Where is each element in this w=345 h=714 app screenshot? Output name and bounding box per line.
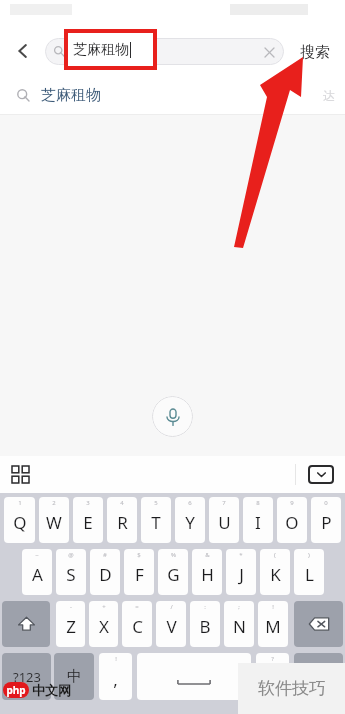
staticText: 中文网 bbox=[32, 682, 71, 698]
staticText: L bbox=[305, 563, 314, 586]
button[interactable]: Keyboard menu bbox=[12, 456, 345, 493]
staticText: ! bbox=[115, 655, 117, 663]
staticText: P bbox=[321, 511, 332, 534]
staticText: A bbox=[32, 563, 43, 586]
staticText: Z bbox=[66, 615, 76, 638]
staticText: ) bbox=[308, 551, 310, 559]
staticText: H bbox=[201, 563, 214, 586]
staticText: K bbox=[270, 563, 281, 586]
button[interactable]: % bbox=[158, 549, 188, 595]
button[interactable]: * bbox=[226, 549, 256, 595]
button[interactable]: Hide keyboard bbox=[308, 465, 334, 484]
staticText: S bbox=[66, 563, 76, 586]
button[interactable]: Space bbox=[137, 653, 251, 700]
button[interactable]: 芝麻租物 bbox=[0, 76, 345, 114]
button[interactable]: Backspace bbox=[294, 601, 343, 647]
staticText: + bbox=[102, 603, 106, 611]
button[interactable]: ( bbox=[260, 549, 290, 595]
button[interactable]: = bbox=[122, 601, 152, 647]
button[interactable]: + bbox=[89, 601, 118, 647]
button[interactable]: Back bbox=[8, 36, 38, 66]
button[interactable]: & bbox=[192, 549, 222, 595]
button[interactable]: ! bbox=[99, 653, 132, 700]
button[interactable]: 1 bbox=[4, 497, 35, 543]
button[interactable]: / bbox=[156, 601, 186, 647]
staticText: , bbox=[113, 668, 118, 691]
button[interactable]: 2 bbox=[39, 497, 69, 543]
button[interactable]: 6 bbox=[175, 497, 205, 543]
staticText: B bbox=[199, 615, 211, 638]
staticText: ? bbox=[271, 655, 274, 663]
staticText: 9 bbox=[290, 499, 294, 507]
staticText: 3 bbox=[86, 499, 90, 507]
button[interactable]: 0 bbox=[311, 497, 341, 543]
button[interactable]: 5 bbox=[141, 497, 171, 543]
staticText: % bbox=[171, 551, 176, 559]
button[interactable]: 中 bbox=[54, 653, 94, 700]
button[interactable]: 搜索 bbox=[292, 38, 338, 66]
staticText: F bbox=[135, 563, 144, 586]
button[interactable]: ?123 bbox=[2, 653, 51, 700]
staticText: 7 bbox=[222, 499, 226, 507]
staticText: # bbox=[103, 551, 107, 559]
button[interactable]: 7 bbox=[209, 497, 239, 543]
staticText: X bbox=[99, 615, 109, 638]
button[interactable]: Clear bbox=[261, 44, 277, 60]
staticText: ?123 bbox=[13, 668, 41, 686]
staticText: 8 bbox=[256, 499, 260, 507]
staticText: $ bbox=[137, 551, 141, 559]
staticText: J bbox=[239, 563, 244, 586]
staticText: 搜索 bbox=[300, 43, 330, 62]
button[interactable]: ~ bbox=[22, 549, 52, 595]
button[interactable]: 3 bbox=[73, 497, 103, 543]
staticText: * bbox=[239, 551, 243, 559]
staticText: @ bbox=[68, 551, 74, 559]
staticText: / bbox=[170, 603, 173, 611]
staticText: ~ bbox=[35, 551, 39, 559]
staticText: Q bbox=[13, 511, 27, 534]
button[interactable]: ? bbox=[256, 653, 289, 700]
staticText: ! bbox=[272, 603, 274, 611]
staticText: Y bbox=[185, 511, 195, 534]
staticText: I bbox=[255, 511, 261, 534]
staticText: 1 bbox=[18, 499, 22, 507]
staticText: W bbox=[46, 511, 62, 534]
staticText: G bbox=[167, 563, 180, 586]
staticText: : bbox=[204, 603, 206, 611]
button[interactable]: Voice input bbox=[152, 396, 193, 437]
button[interactable]: ) bbox=[294, 549, 324, 595]
button[interactable]: @ bbox=[56, 549, 86, 595]
button[interactable]: $ bbox=[124, 549, 154, 595]
staticText: 5 bbox=[154, 499, 158, 507]
staticText: N bbox=[233, 615, 246, 638]
staticText: 6 bbox=[188, 499, 192, 507]
staticText: O bbox=[285, 511, 299, 534]
staticText: V bbox=[166, 615, 177, 638]
staticText: C bbox=[132, 615, 143, 638]
button[interactable]: Enter bbox=[294, 653, 343, 700]
staticText: 软件技巧 bbox=[258, 678, 326, 699]
staticText: T bbox=[151, 511, 161, 534]
staticText: & bbox=[205, 551, 210, 559]
staticText: - bbox=[70, 603, 72, 611]
staticText: 达 bbox=[323, 88, 335, 103]
button[interactable]: 9 bbox=[277, 497, 307, 543]
staticText: 4 bbox=[120, 499, 124, 507]
staticText: . bbox=[270, 668, 275, 691]
staticText: R bbox=[117, 511, 128, 534]
button[interactable]: ! bbox=[258, 601, 288, 647]
staticText: E bbox=[83, 511, 93, 534]
button[interactable]: Shift bbox=[2, 601, 50, 647]
button[interactable]: - bbox=[56, 601, 85, 647]
button[interactable]: : bbox=[190, 601, 220, 647]
staticText: 中 bbox=[67, 667, 82, 686]
staticText: = bbox=[135, 603, 139, 611]
button[interactable]: 8 bbox=[243, 497, 273, 543]
button[interactable]: 4 bbox=[107, 497, 137, 543]
button[interactable]: ; bbox=[224, 601, 254, 647]
staticText: ( bbox=[274, 551, 276, 559]
button[interactable]: # bbox=[90, 549, 120, 595]
staticText: 芝麻租物 bbox=[73, 41, 129, 59]
staticText: M bbox=[265, 615, 281, 638]
button[interactable]: Clear bbox=[45, 38, 284, 65]
